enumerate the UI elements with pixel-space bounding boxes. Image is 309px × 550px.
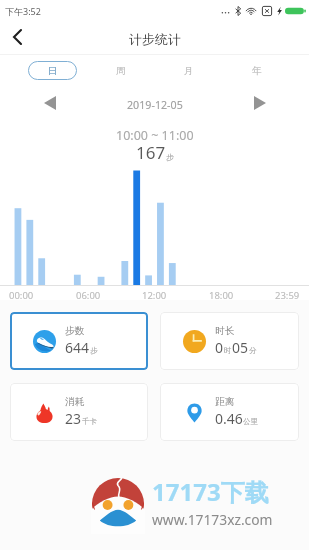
staticText: 17173下载	[152, 475, 269, 508]
staticText: 计步统计	[129, 31, 181, 47]
button[interactable]: 步数	[10, 312, 148, 370]
button[interactable]: 上一天	[38, 90, 62, 116]
staticText: 05	[232, 338, 249, 357]
staticText: www.17173xz.com	[152, 510, 273, 529]
button[interactable]: 下一天	[248, 90, 272, 116]
staticText: 日	[48, 65, 58, 77]
button[interactable]: 距离	[160, 383, 299, 441]
button[interactable]: 年	[224, 61, 289, 80]
staticText: 167	[136, 141, 166, 164]
staticText: 644	[65, 338, 90, 357]
staticText: 步	[90, 346, 98, 355]
staticText: 23	[65, 409, 82, 428]
staticText: 时	[224, 346, 232, 355]
staticText: 0.46	[215, 409, 243, 428]
staticText: 下午3:52	[5, 5, 41, 17]
staticText: 10:00 ~ 11:00	[116, 127, 194, 144]
staticText: 年	[252, 65, 262, 77]
staticText: 2019-12-05	[127, 98, 183, 113]
staticText: 00:00	[9, 289, 34, 302]
staticText: 步数	[65, 325, 85, 337]
staticText: 公里	[243, 417, 258, 426]
button[interactable]: 时长	[160, 312, 299, 370]
staticText: 时长	[215, 325, 235, 337]
staticText: 消耗	[65, 396, 85, 408]
staticText: 步	[166, 152, 174, 162]
staticText: 月	[184, 65, 194, 77]
button[interactable]: 月	[156, 61, 221, 80]
staticText: 12:00	[142, 289, 167, 302]
staticText: 距离	[215, 396, 235, 408]
staticText: 0	[215, 338, 224, 357]
staticText: 周	[116, 65, 126, 77]
staticText: 23:59	[275, 289, 300, 302]
button[interactable]: 消耗	[10, 383, 148, 441]
button[interactable]: 日	[20, 61, 85, 80]
staticText: 18:00	[209, 289, 234, 302]
staticText: 06:00	[76, 289, 101, 302]
button[interactable]: 周	[88, 61, 153, 80]
staticText: 分	[249, 346, 257, 355]
staticText: 千卡	[82, 417, 97, 426]
button[interactable]: 返回	[2, 24, 32, 50]
